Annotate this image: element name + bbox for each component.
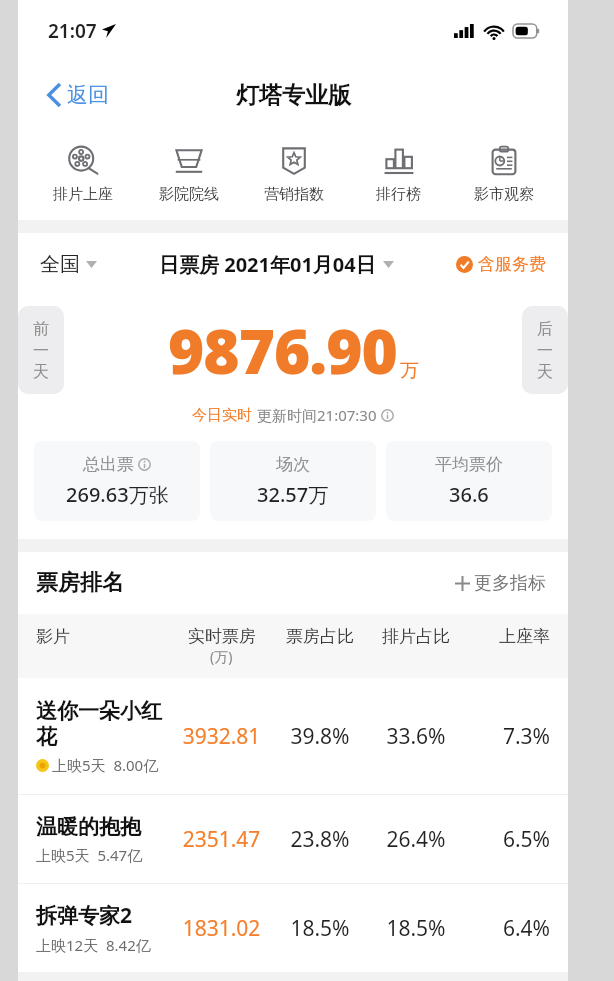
staticText: 23.8% bbox=[272, 825, 368, 854]
button[interactable]: 后 一 天 bbox=[522, 306, 568, 394]
button[interactable]: 含服务费 bbox=[452, 250, 550, 279]
staticText: (万) bbox=[210, 647, 233, 666]
button[interactable]: 场次 bbox=[210, 441, 376, 521]
button[interactable]: 送你一朵小红 bbox=[18, 678, 568, 794]
staticText: 269.63万张 bbox=[66, 481, 169, 508]
button[interactable]: 日票房 2021年01月04日 bbox=[155, 247, 398, 282]
staticText: 排片占比 bbox=[368, 626, 464, 647]
staticText: 总出票 bbox=[83, 454, 134, 475]
staticText: 花 bbox=[36, 724, 57, 750]
staticText: 排行榜 bbox=[376, 185, 421, 204]
button[interactable]: 温暖的抱抱 bbox=[18, 795, 568, 883]
staticText: 含服务费 bbox=[478, 254, 546, 275]
staticText: 18.5% bbox=[272, 914, 368, 943]
staticText: 场次 bbox=[276, 454, 310, 475]
staticText: 上座率 bbox=[464, 626, 550, 647]
staticText: 更多指标 bbox=[474, 572, 546, 595]
staticText: 日票房 2021年01月04日 bbox=[159, 251, 376, 278]
staticText: 平均票价 bbox=[435, 454, 503, 475]
staticText: 实时票房 bbox=[188, 626, 256, 647]
staticText: 36.6 bbox=[449, 481, 489, 508]
staticText: 返回 bbox=[67, 82, 109, 108]
staticText: 33.6% bbox=[368, 722, 464, 751]
staticText: 7.3% bbox=[464, 722, 550, 751]
staticText: 灯塔专业版 bbox=[236, 81, 351, 110]
staticText: 后 一 天 bbox=[537, 319, 553, 381]
staticText: 6.5% bbox=[464, 825, 550, 854]
staticText: 21:07 bbox=[48, 18, 97, 44]
staticText: 上映5天 5.47亿 bbox=[36, 845, 143, 865]
button[interactable]: 排行榜 bbox=[346, 128, 451, 220]
staticText: 2351.47 bbox=[171, 825, 272, 854]
staticText: 上映5天 8.00亿 bbox=[52, 755, 159, 775]
staticText: 排片上座 bbox=[53, 185, 113, 204]
staticText: 全国 bbox=[40, 252, 80, 277]
staticText: 更新时间21:07:30 bbox=[257, 405, 377, 425]
button[interactable]: 平均票价 bbox=[386, 441, 552, 521]
button[interactable]: 排片上座 bbox=[30, 128, 136, 220]
staticText: 今日实时 bbox=[192, 406, 252, 425]
staticText: 3932.81 bbox=[171, 722, 272, 751]
staticText: 39.8% bbox=[272, 722, 368, 751]
staticText: 9876.90 bbox=[168, 308, 397, 392]
button[interactable]: 营销指数 bbox=[241, 128, 346, 220]
staticText: 影市观察 bbox=[474, 185, 534, 204]
button[interactable]: 更多指标 bbox=[451, 568, 550, 599]
staticText: 32.57万 bbox=[257, 481, 329, 508]
staticText: 拆弹专家2 bbox=[36, 901, 133, 930]
button[interactable]: 影市观察 bbox=[451, 128, 556, 220]
staticText: 送你一朵小红 bbox=[36, 698, 162, 724]
button[interactable]: 返回 bbox=[44, 78, 113, 112]
button[interactable]: 拆弹专家2 bbox=[18, 884, 568, 972]
staticText: 营销指数 bbox=[264, 185, 324, 204]
staticText: 票房占比 bbox=[272, 626, 368, 647]
staticText: 万 bbox=[400, 359, 419, 383]
staticText: 影院院线 bbox=[159, 185, 219, 204]
button[interactable]: 前 一 天 bbox=[18, 306, 64, 394]
staticText: 票房排名 bbox=[36, 569, 124, 597]
staticText: 前 一 天 bbox=[33, 319, 49, 381]
staticText: 6.4% bbox=[464, 914, 550, 943]
staticText: 影片 bbox=[36, 626, 171, 647]
button[interactable]: 影院院线 bbox=[136, 128, 241, 220]
button[interactable]: 总出票 bbox=[34, 441, 200, 521]
staticText: 上映12天 8.42亿 bbox=[36, 935, 151, 955]
button[interactable]: 全国 bbox=[36, 248, 101, 281]
staticText: 26.4% bbox=[368, 825, 464, 854]
staticText: 18.5% bbox=[368, 914, 464, 943]
staticText: 温暖的抱抱 bbox=[36, 814, 141, 840]
staticText: 1831.02 bbox=[171, 914, 272, 943]
